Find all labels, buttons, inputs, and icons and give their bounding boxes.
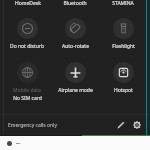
button[interactable] xyxy=(0,136,150,150)
staticText: Auto-rotate xyxy=(62,43,89,50)
button[interactable]: Mobile data xyxy=(4,62,50,102)
staticText: No SIM card xyxy=(13,95,42,102)
staticText: Mobile data xyxy=(13,87,41,94)
button[interactable]: Airplane mode xyxy=(52,62,98,94)
button[interactable]: Do not disturb xyxy=(4,18,50,50)
button[interactable]: Bluetooth xyxy=(53,0,97,9)
staticText: Airplane mode xyxy=(58,87,93,94)
button[interactable]: Settings xyxy=(129,117,145,133)
button[interactable]: Edit xyxy=(113,117,129,133)
button[interactable]: Auto-rotate xyxy=(52,18,98,50)
button[interactable]: Flashlight xyxy=(100,18,146,50)
button[interactable]: Hotspot xyxy=(100,62,146,94)
staticText: HomeDesk xyxy=(15,0,41,7)
staticText: Bluetooth xyxy=(63,0,87,7)
staticText: STAMINA xyxy=(112,0,134,7)
staticText: Emergency calls only xyxy=(8,122,57,129)
button[interactable]: HomeDesk xyxy=(6,0,50,9)
staticText: Do not disturb xyxy=(10,43,44,50)
staticText: Flashlight xyxy=(112,43,135,50)
staticText: Hotspot xyxy=(114,87,133,94)
button[interactable]: STAMINA xyxy=(101,0,145,9)
